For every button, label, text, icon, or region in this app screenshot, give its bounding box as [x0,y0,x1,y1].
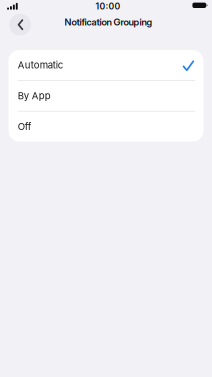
staticText: By App [18,90,51,101]
staticText: Automatic [18,59,63,71]
button[interactable]: By App [8,81,203,111]
staticText: Off [18,121,32,132]
staticText: 10:00 [95,1,120,11]
button[interactable]: Back [9,13,31,35]
button[interactable]: Off [8,112,203,142]
staticText: Notification Grouping [65,16,153,28]
button[interactable]: Automatic [8,50,203,80]
